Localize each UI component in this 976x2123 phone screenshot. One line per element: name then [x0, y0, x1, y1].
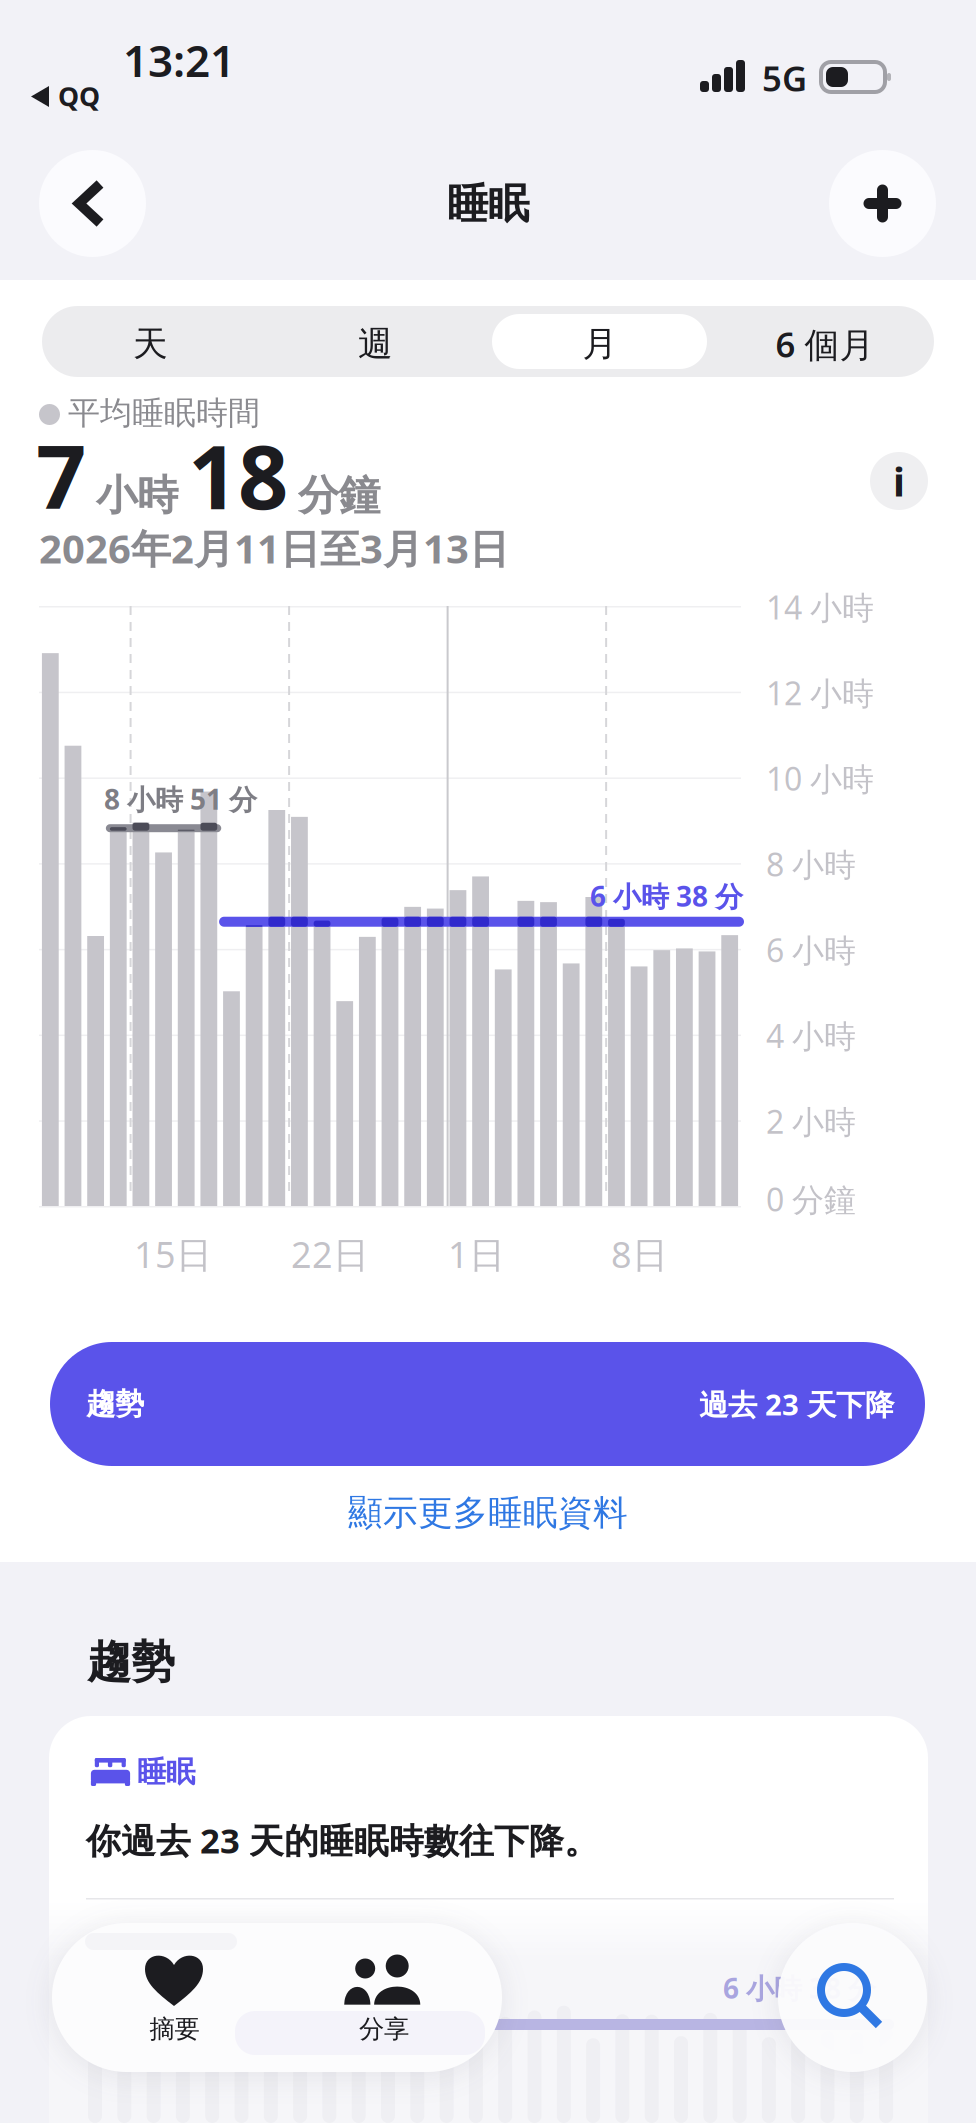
button[interactable]: Info: [870, 452, 928, 510]
staticText: 2 小時: [766, 1100, 856, 1142]
staticText: 6 小時: [766, 929, 856, 971]
staticText: 10 小時: [766, 757, 874, 800]
staticText: 4 小時: [766, 1014, 856, 1057]
staticText: i: [893, 454, 905, 507]
staticText: 睡眠: [447, 179, 529, 229]
staticText: 7: [36, 417, 86, 533]
staticText: 8日: [611, 1230, 668, 1278]
staticText: 15日: [134, 1230, 212, 1278]
staticText: 睡眠: [137, 1754, 195, 1790]
staticText: 分鐘: [298, 470, 380, 521]
button[interactable]: 摘要: [52, 1923, 277, 2072]
staticText: 6 小時 38 分: [723, 1969, 876, 2007]
staticText: 2026年2月11日至3月13日: [39, 521, 509, 574]
button[interactable]: 週: [0, 0, 223, 71]
staticText: 平均睡眠時間: [68, 393, 260, 433]
staticText: 月: [582, 323, 617, 365]
staticText: QQ: [58, 78, 100, 114]
staticText: 1日: [448, 1230, 505, 1278]
button[interactable]: Search: [778, 1923, 927, 2072]
staticText: 18: [188, 417, 288, 533]
button[interactable]: 月: [0, 0, 223, 71]
staticText: 趨勢: [87, 1635, 175, 1689]
button[interactable]: Back: [39, 150, 146, 257]
button[interactable]: 分享: [277, 1923, 502, 2072]
staticText: 週: [358, 323, 393, 365]
staticText: 小時: [96, 470, 178, 521]
staticText: 你過去 23 天的睡眠時數往下降。: [86, 1817, 599, 1863]
staticText: 8 小時: [766, 843, 856, 885]
button[interactable]: 顯示更多睡眠資料: [0, 0, 500, 60]
staticText: 過去 23 天下降: [699, 1384, 894, 1423]
staticText: 趨勢: [86, 1386, 144, 1422]
staticText: 13:21: [123, 31, 235, 89]
staticText: 12 小時: [766, 671, 874, 714]
staticText: 8 小時 51 分: [104, 780, 257, 818]
button[interactable]: 趨勢: [50, 1342, 925, 1466]
staticText: 5G: [762, 55, 807, 101]
button[interactable]: Add: [829, 150, 936, 257]
staticText: 顯示更多睡眠資料: [348, 1492, 628, 1534]
staticText: 6 個月: [775, 321, 874, 367]
staticText: 0 分鐘: [766, 1178, 856, 1220]
staticText: 摘要: [149, 2013, 199, 2044]
staticText: 22日: [291, 1230, 369, 1278]
button[interactable]: 6 個月: [0, 0, 223, 71]
staticText: 天: [133, 323, 168, 365]
staticText: 6 小時 38 分: [590, 877, 743, 915]
staticText: 分享: [359, 2013, 409, 2044]
staticText: 14 小時: [766, 586, 874, 628]
button[interactable]: 天: [0, 0, 223, 71]
